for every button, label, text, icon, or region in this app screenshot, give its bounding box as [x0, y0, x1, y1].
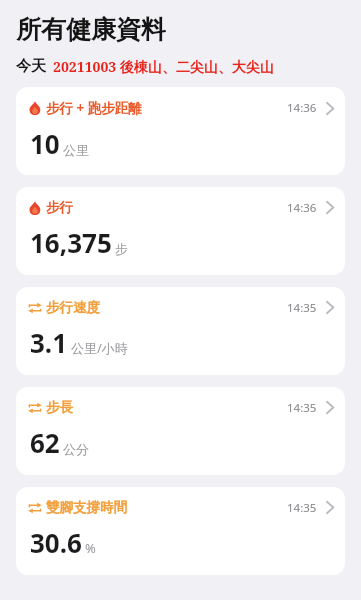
staticText: 步 — [115, 241, 128, 257]
staticText: 今天 — [16, 57, 46, 76]
staticText: 10 — [30, 126, 60, 161]
other: Show details — [326, 501, 334, 514]
staticText: 公里/小時 — [71, 339, 128, 357]
other: Show details — [326, 401, 334, 414]
other: Show details — [326, 301, 334, 314]
staticText: 公分 — [63, 441, 89, 457]
staticText: 62 — [30, 425, 60, 460]
staticText: 所有健康資料 — [16, 14, 166, 45]
staticText: 步長 — [46, 399, 73, 416]
button[interactable]: 步長 — [16, 387, 345, 475]
staticText: 步行 — [46, 199, 73, 216]
staticText: 14:35 — [287, 300, 317, 316]
staticText: 公里 — [63, 142, 89, 158]
other: Show details — [326, 201, 334, 214]
staticText: 20211003 後棟山、二尖山、大尖山 — [53, 57, 274, 76]
staticText: 14:35 — [287, 400, 317, 416]
staticText: 14:35 — [287, 500, 317, 516]
staticText: 14:36 — [287, 200, 317, 216]
button[interactable]: 步行 + 跑步距離 — [16, 87, 345, 175]
button[interactable]: 雙腳支撐時間 — [16, 487, 345, 575]
button[interactable]: 步行 — [16, 187, 345, 275]
button[interactable]: 步行速度 — [16, 287, 345, 375]
staticText: 14:36 — [287, 100, 317, 116]
staticText: 16,375 — [30, 225, 112, 260]
staticText: 30.6 — [30, 525, 82, 560]
staticText: 雙腳支撐時間 — [46, 499, 127, 516]
staticText: % — [85, 539, 96, 557]
other: Show details — [326, 102, 334, 115]
staticText: 步行速度 — [46, 299, 100, 316]
staticText: 3.1 — [30, 325, 68, 360]
staticText: 步行 + 跑步距離 — [46, 99, 142, 117]
